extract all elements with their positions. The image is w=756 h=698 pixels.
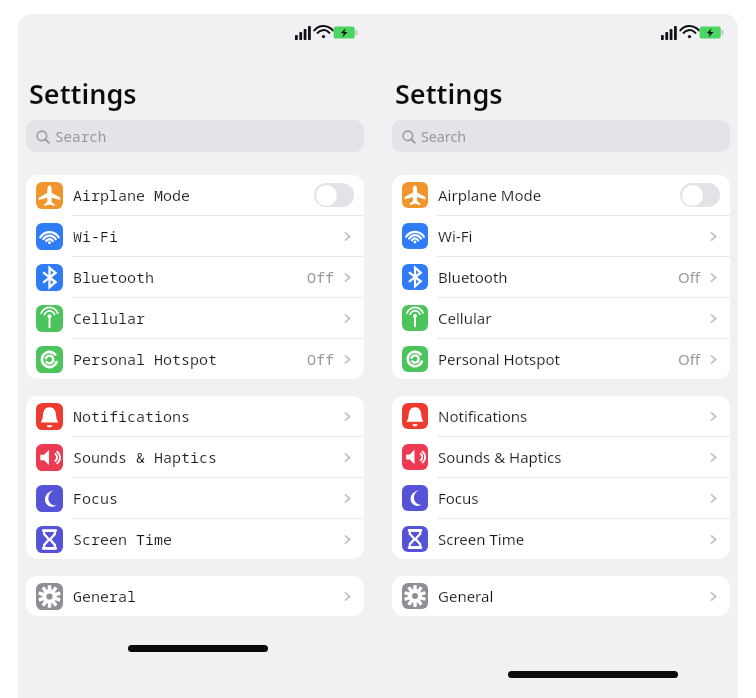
staticText: Sounds & Haptics	[438, 447, 707, 467]
button[interactable]: Airplane Mode	[392, 175, 730, 215]
button[interactable]: Cellular	[392, 298, 730, 338]
staticText: Screen Time	[438, 529, 707, 549]
other: Open Screen Time	[707, 533, 720, 546]
other: Open Wi-Fi	[707, 230, 720, 243]
button[interactable]: General	[392, 576, 730, 616]
staticText: Personal Hotspot	[438, 349, 678, 369]
staticText: Airplane Mode	[438, 185, 680, 205]
staticText: Personal Hotspot	[73, 349, 307, 369]
staticText: Bluetooth	[73, 267, 307, 287]
staticText: Search	[55, 127, 107, 146]
other: Open Focus	[341, 492, 354, 505]
other: Open Notifications	[341, 410, 354, 423]
staticText: Off	[307, 267, 335, 287]
button[interactable]: Wi-Fi	[392, 216, 730, 256]
staticText: General	[438, 586, 707, 606]
staticText: Airplane Mode	[73, 185, 314, 205]
staticText: Settings	[29, 75, 137, 112]
other: Open Personal Hotspot	[707, 353, 720, 366]
staticText: Cellular	[73, 308, 341, 328]
button[interactable]: Airplane Mode	[26, 175, 364, 215]
staticText: Screen Time	[73, 529, 341, 549]
button[interactable]: Sounds & Haptics	[26, 437, 364, 477]
button[interactable]: Bluetooth	[392, 257, 730, 297]
other: Open Sounds & Haptics	[341, 451, 354, 464]
other: Open General	[707, 590, 720, 603]
other: Open Bluetooth	[341, 271, 354, 284]
other: Open Wi-Fi	[341, 230, 354, 243]
other: Open Screen Time	[341, 533, 354, 546]
staticText: Notifications	[438, 406, 707, 426]
staticText: Cellular	[438, 308, 707, 328]
button[interactable]: Notifications	[392, 396, 730, 436]
button[interactable]: Search	[392, 120, 730, 152]
button[interactable]: Search	[26, 120, 364, 152]
staticText: Notifications	[73, 406, 341, 426]
staticText: Settings	[395, 75, 503, 112]
other: Open Notifications	[707, 410, 720, 423]
staticText: Focus	[438, 488, 707, 508]
other: Open Cellular	[341, 312, 354, 325]
button[interactable]: Airplane Mode toggle, off	[314, 183, 354, 207]
other: Open Bluetooth	[707, 271, 720, 284]
staticText: Off	[678, 267, 701, 287]
staticText: Wi-Fi	[438, 226, 707, 246]
button[interactable]: Focus	[26, 478, 364, 518]
button[interactable]: Screen Time	[392, 519, 730, 559]
staticText: Search	[421, 127, 467, 146]
staticText: Bluetooth	[438, 267, 678, 287]
button[interactable]: Bluetooth	[26, 257, 364, 297]
staticText: Sounds & Haptics	[73, 447, 341, 467]
staticText: Off	[678, 349, 701, 369]
button[interactable]: Cellular	[26, 298, 364, 338]
button[interactable]: Screen Time	[26, 519, 364, 559]
other: Open Sounds & Haptics	[707, 451, 720, 464]
button[interactable]: Personal Hotspot	[392, 339, 730, 379]
other: Open Focus	[707, 492, 720, 505]
button[interactable]: Notifications	[26, 396, 364, 436]
staticText: Focus	[73, 488, 341, 508]
button[interactable]: Personal Hotspot	[26, 339, 364, 379]
staticText: General	[73, 586, 341, 606]
staticText: Wi-Fi	[73, 226, 341, 246]
other: Open Cellular	[707, 312, 720, 325]
other: Open General	[341, 590, 354, 603]
staticText: Off	[307, 349, 335, 369]
button[interactable]: Sounds & Haptics	[392, 437, 730, 477]
other: Open Personal Hotspot	[341, 353, 354, 366]
button[interactable]: Airplane Mode toggle, off	[680, 183, 720, 207]
button[interactable]: General	[26, 576, 364, 616]
button[interactable]: Focus	[392, 478, 730, 518]
button[interactable]: Wi-Fi	[26, 216, 364, 256]
